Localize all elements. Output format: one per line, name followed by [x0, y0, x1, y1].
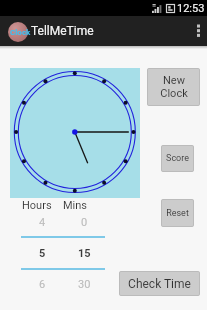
staticText: TellMeTime: [31, 24, 94, 38]
button[interactable]: 6: [21, 269, 63, 299]
staticText: Clock: [10, 28, 31, 37]
staticText: 30: [78, 278, 91, 291]
staticText: Score: [166, 153, 189, 164]
button[interactable]: 5: [21, 237, 63, 269]
staticText: Mins: [63, 199, 88, 209]
button[interactable]: Reset: [161, 199, 194, 227]
staticText: 6: [39, 278, 46, 291]
button[interactable]: 4: [21, 207, 63, 237]
staticText: Check Time: [128, 277, 191, 291]
button[interactable]: Check Time: [119, 271, 200, 296]
staticText: 12:53: [177, 2, 205, 15]
staticText: 15: [78, 247, 91, 260]
button[interactable]: 15: [63, 237, 105, 269]
button[interactable]: Score: [161, 145, 194, 172]
staticText: 0: [81, 216, 88, 229]
staticText: 5: [39, 247, 46, 260]
button[interactable]: 30: [63, 269, 105, 299]
staticText: Reset: [166, 208, 189, 219]
staticText: 4: [39, 216, 46, 229]
button[interactable]: More options: [187, 16, 207, 46]
button[interactable]: New Clock: [147, 68, 200, 106]
staticText: New Clock: [160, 74, 188, 100]
staticText: Hours: [22, 199, 52, 209]
button[interactable]: 0: [63, 207, 105, 237]
